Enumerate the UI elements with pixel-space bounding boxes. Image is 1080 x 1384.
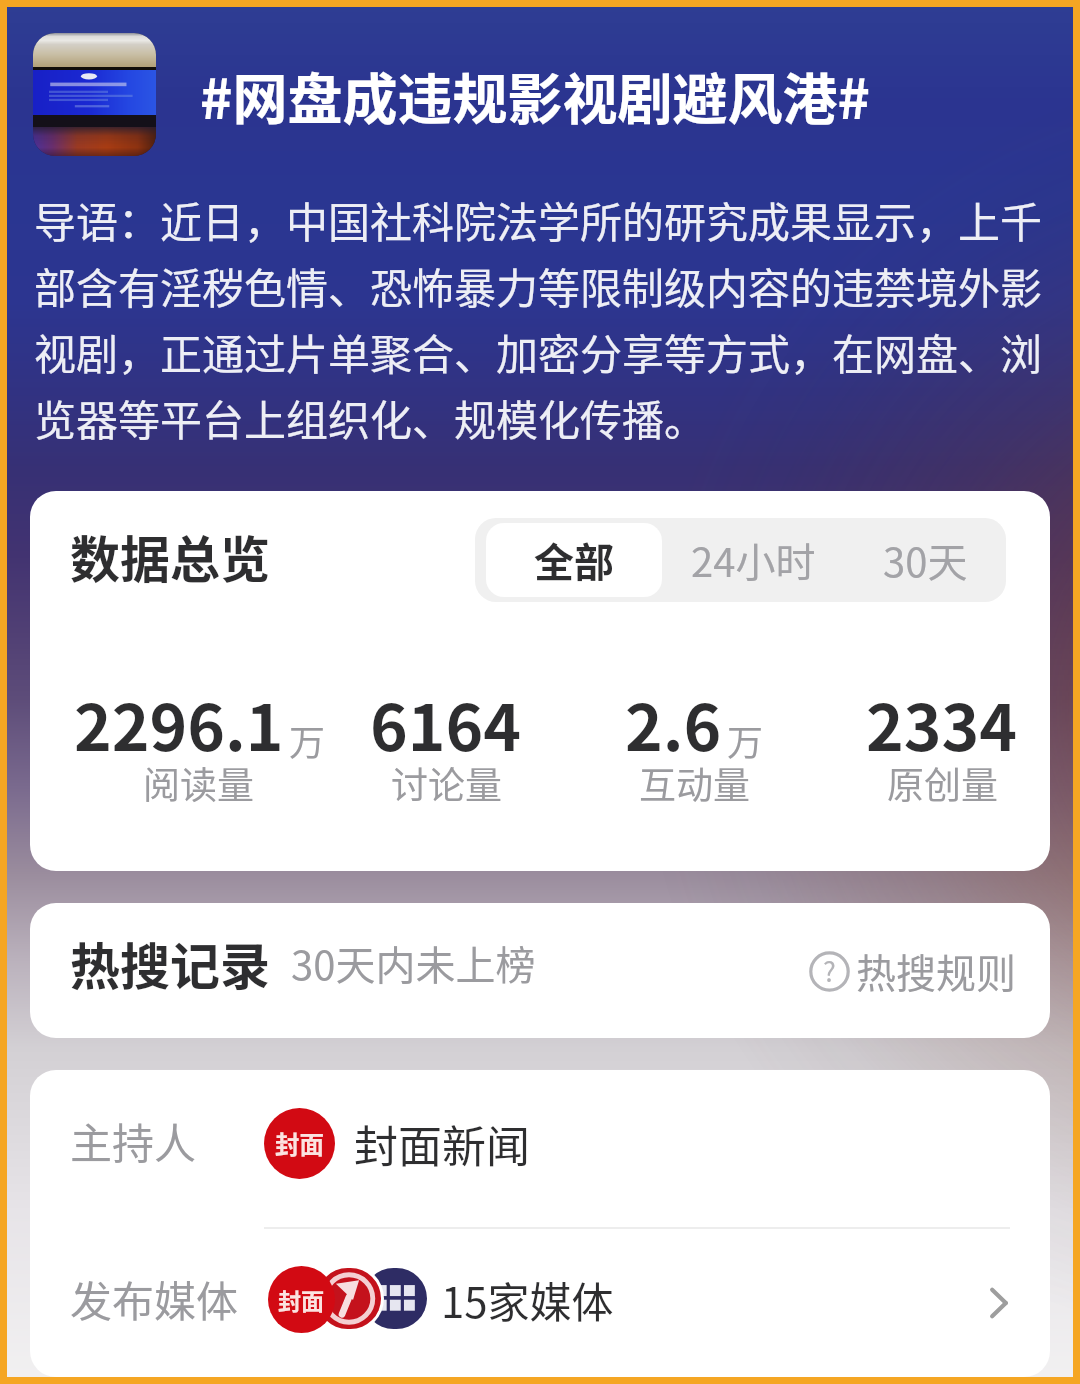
staticText: 万 [289,714,322,766]
staticText: 30天 [883,531,968,589]
staticText: 24小时 [691,531,816,589]
staticText: 30天内未上榜 [291,934,536,992]
button[interactable]: Hot search rules [809,942,1016,1000]
button[interactable]: 主持人 [30,1070,1050,1227]
button[interactable]: 24小时 [662,518,845,602]
staticText: 讨论量 [391,756,502,810]
staticText: 原创量 [887,756,998,810]
staticText: 全部 [534,531,614,589]
staticText: 封面 [278,1283,325,1316]
staticText: #网盘成违规影视剧避风港# [200,55,870,135]
staticText: 封面 [275,1126,324,1161]
staticText: 6164 [370,677,522,770]
button[interactable]: Topic cover image [33,33,156,156]
button[interactable]: 热搜记录 [30,903,1050,1038]
staticText: 热搜记录 [70,927,270,999]
staticText: ? [823,951,836,990]
staticText: 主持人 [70,1110,197,1171]
button[interactable]: 30天 [845,518,1006,602]
other: View all media [990,1288,1008,1318]
staticText: 互动量 [639,756,750,810]
staticText: 导语：近日，中国社科院法学所的研究成果显示，上千部含有淫秽色情、恐怖暴力等限制级… [34,185,1046,449]
staticText: 2334 [866,677,1018,770]
button[interactable]: #网盘成违规影视剧避风港# [200,55,870,135]
staticText: 万 [727,714,764,766]
staticText: 2296.1 [74,677,284,770]
staticText: 封面新闻 [354,1112,530,1176]
button[interactable]: 发布媒体 [30,1229,1050,1377]
staticText: 数据总览 [70,520,270,592]
button[interactable]: 全部 [486,523,662,597]
staticText: 2.6 [625,677,722,770]
staticText: 发布媒体 [70,1268,239,1329]
staticText: 阅读量 [143,756,254,810]
staticText: 15家媒体 [441,1269,614,1330]
staticText: 热搜规则 [856,942,1016,1000]
